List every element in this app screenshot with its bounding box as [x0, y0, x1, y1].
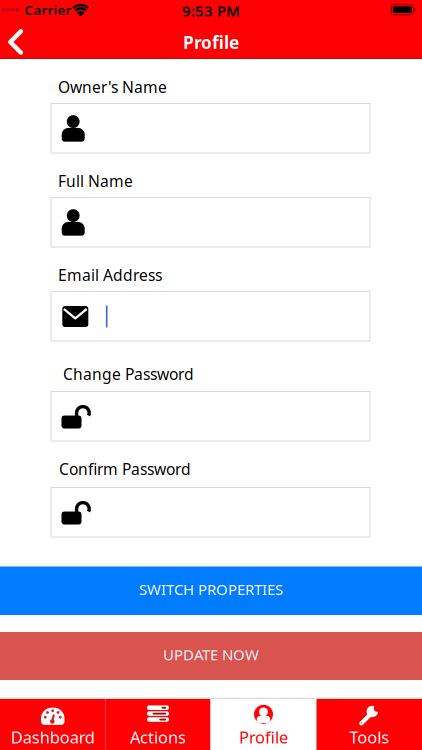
- staticText: Actions: [130, 726, 186, 748]
- staticText: UPDATE NOW: [163, 644, 259, 665]
- button[interactable]: Change Password text field: [50, 391, 370, 441]
- staticText: Profile: [183, 30, 239, 54]
- button[interactable]: Full Name text field: [50, 197, 370, 247]
- staticText: Confirm Password: [59, 458, 191, 479]
- staticText: SWITCH PROPERTIES: [139, 579, 283, 599]
- staticText: Full Name: [58, 170, 133, 191]
- staticText: Profile: [239, 726, 288, 748]
- button[interactable]: Confirm Password text field: [50, 487, 370, 537]
- button[interactable]: Dashboard: [0, 699, 105, 750]
- staticText: Owner's Name: [58, 76, 167, 97]
- staticText: Tools: [349, 726, 389, 748]
- button[interactable]: Profile: [210, 699, 316, 750]
- staticText: Carrier: [24, 1, 71, 19]
- button[interactable]: SWITCH PROPERTIES: [0, 566, 422, 615]
- button[interactable]: Owner's Name text field: [50, 103, 370, 153]
- staticText: Email Address: [58, 264, 162, 285]
- button[interactable]: UPDATE NOW: [0, 632, 422, 680]
- staticText: Dashboard: [11, 726, 95, 748]
- button[interactable]: Back: [4, 29, 28, 55]
- button[interactable]: Email Address text field: [50, 291, 370, 341]
- button[interactable]: Tools: [316, 699, 422, 750]
- staticText: 9:53 PM: [182, 0, 240, 21]
- staticText: Change Password: [63, 363, 194, 384]
- button[interactable]: Actions: [105, 699, 210, 750]
